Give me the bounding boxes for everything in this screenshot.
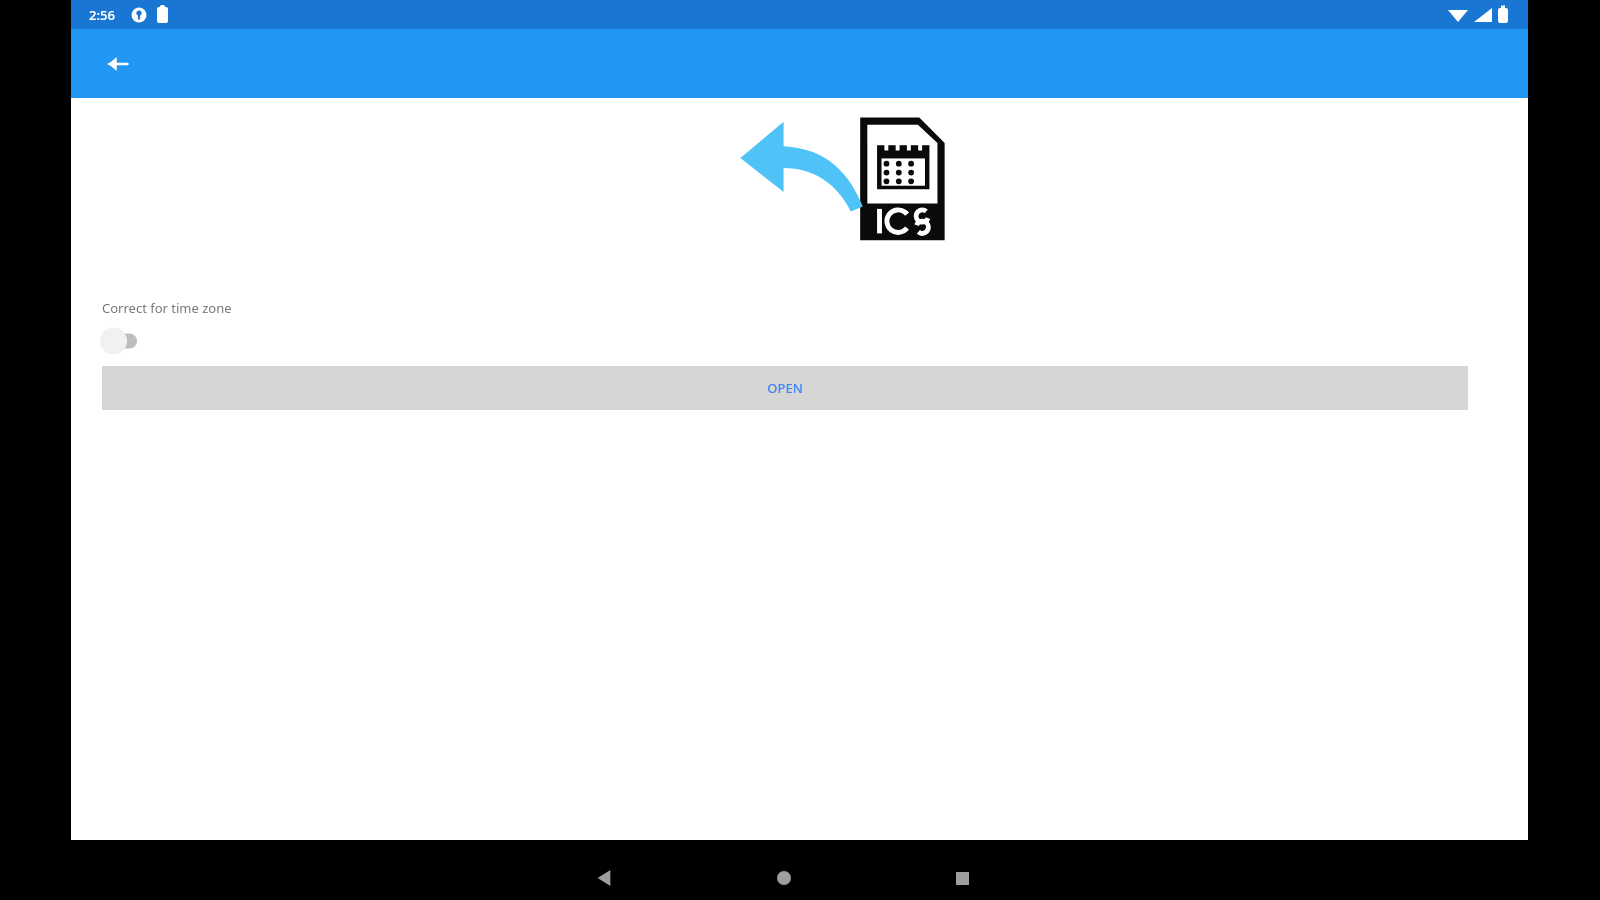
- button[interactable]: Home: [760, 854, 808, 900]
- button[interactable]: Back: [580, 854, 628, 900]
- staticText: Correct for time zone: [102, 299, 232, 317]
- button[interactable]: OPEN: [102, 366, 1468, 410]
- button[interactable]: Recent apps: [938, 854, 986, 900]
- button[interactable]: Navigate up: [94, 40, 142, 88]
- staticText: 2:56: [89, 6, 115, 24]
- button[interactable]: Correct for time zone toggle: [99, 324, 155, 358]
- staticText: OPEN: [767, 379, 803, 397]
